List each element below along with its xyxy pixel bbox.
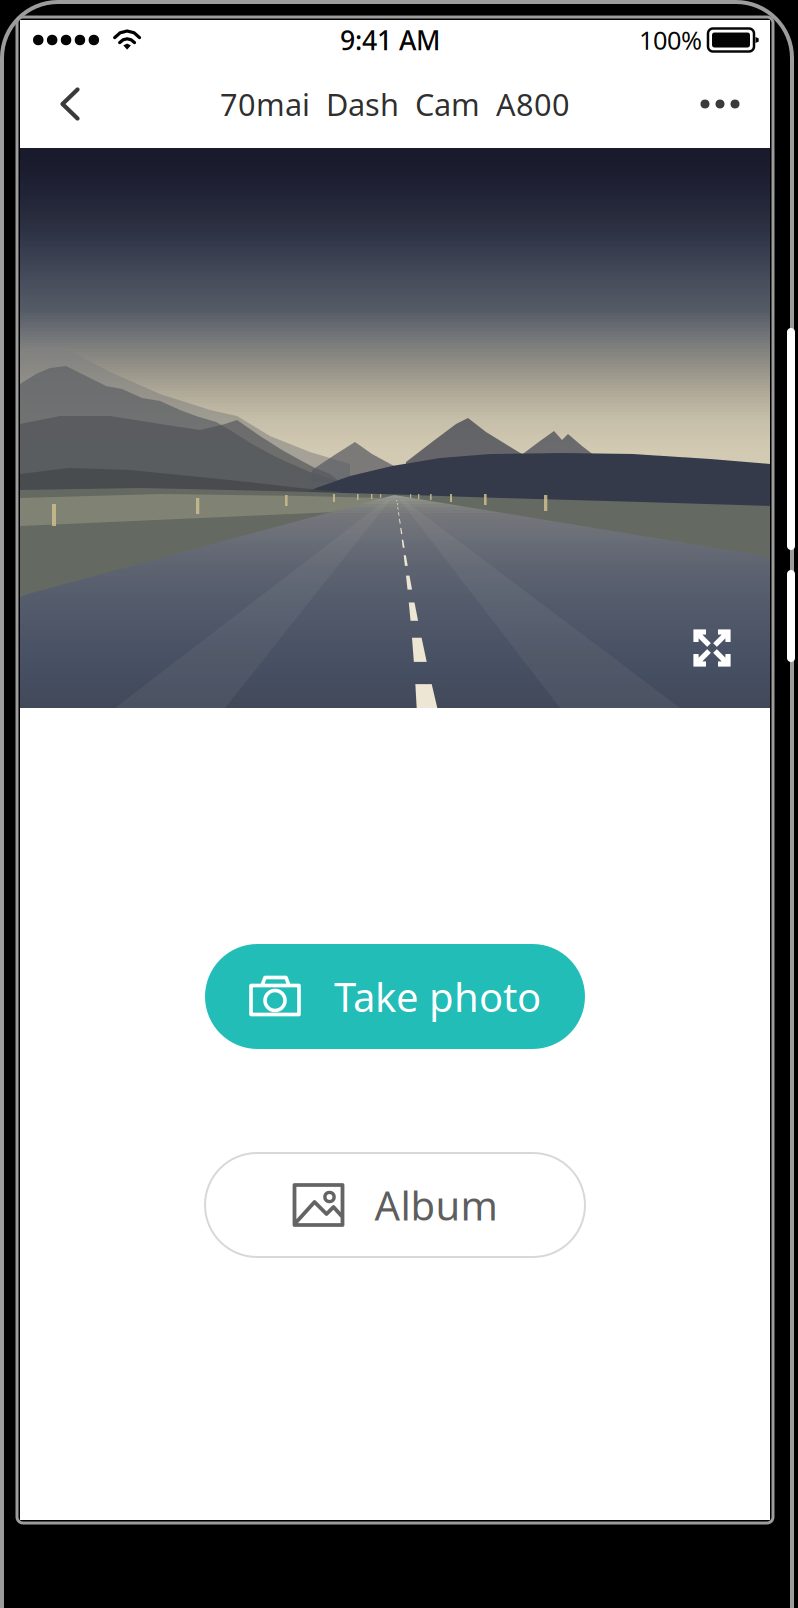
staticText: 70mai Dash Cam A800 [220, 84, 570, 124]
staticText: Album [374, 1178, 497, 1231]
staticText: 9:41 AM [340, 22, 440, 58]
button[interactable]: Back [38, 60, 102, 148]
staticText: Take photo [334, 970, 541, 1023]
staticText: 100% [639, 23, 702, 57]
button[interactable]: Album [205, 1153, 585, 1257]
button[interactable]: More options [684, 60, 756, 148]
button[interactable]: Take photo [205, 944, 585, 1049]
button[interactable]: Full screen [684, 620, 740, 676]
